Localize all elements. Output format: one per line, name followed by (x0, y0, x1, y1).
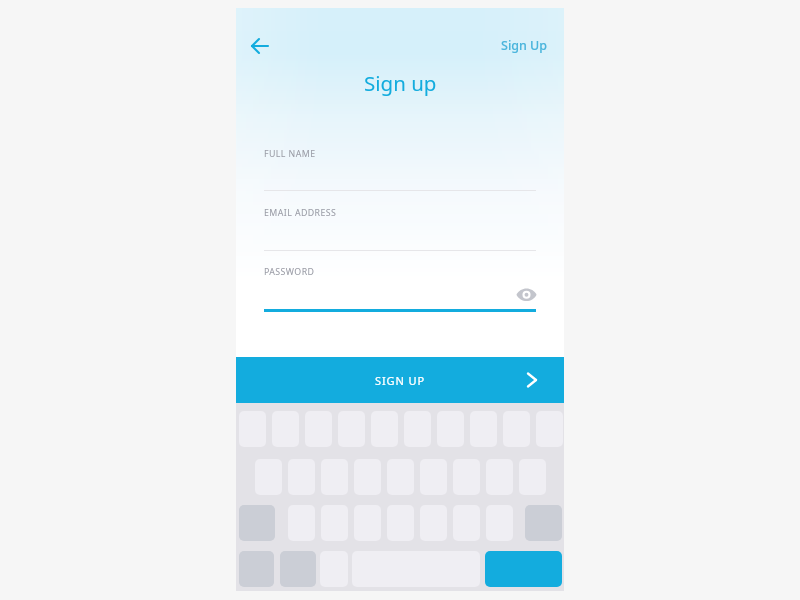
staticText: SIGN UP (375, 373, 425, 388)
button[interactable]: SIGN UP (236, 357, 564, 403)
staticText: PASSWORD (264, 266, 315, 278)
button[interactable]: Sign Up (495, 32, 554, 59)
staticText: Sign up (364, 69, 437, 97)
staticText: EMAIL ADDRESS (264, 207, 337, 219)
staticText: FULL NAME (264, 148, 316, 160)
button[interactable]: Back (244, 30, 276, 62)
button[interactable]: Show password (516, 287, 537, 302)
staticText: Sign Up (501, 37, 548, 54)
button[interactable]: Enter (485, 551, 562, 587)
